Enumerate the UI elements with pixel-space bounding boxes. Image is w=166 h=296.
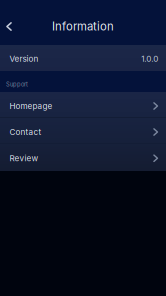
staticText: Contact	[9, 127, 41, 137]
button[interactable]: Review	[0, 144, 166, 171]
staticText: Review	[9, 153, 38, 163]
button[interactable]: Back	[0, 13, 18, 39]
staticText: Homepage	[9, 101, 52, 111]
staticText: Version	[9, 54, 38, 64]
staticText: 1.0.0	[141, 54, 158, 64]
staticText: Information	[52, 20, 114, 33]
button[interactable]: Contact	[0, 118, 166, 144]
button[interactable]: Homepage	[0, 92, 166, 118]
staticText: Support	[6, 81, 28, 88]
